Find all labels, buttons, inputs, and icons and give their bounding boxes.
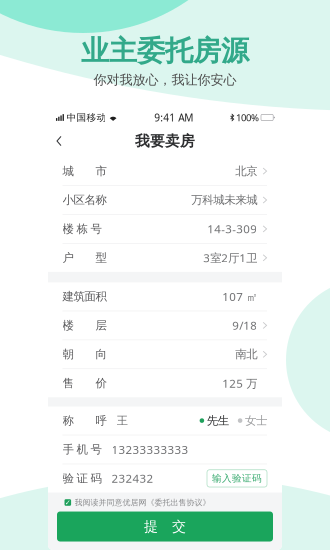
button[interactable]: ✓ — [48, 495, 282, 509]
staticText: 称 呼 — [62, 413, 106, 428]
button[interactable]: 小区名称 — [48, 186, 282, 214]
staticText: ✓ — [65, 498, 71, 507]
button[interactable]: 楼 层 — [48, 311, 282, 339]
staticText: 小区名称 — [62, 193, 106, 207]
button[interactable]: 称 呼 — [48, 406, 282, 435]
staticText: 我阅读并同意优居网《委托出售协议》 — [75, 497, 211, 508]
staticText: 13233333333 — [111, 442, 188, 457]
staticText: 万科城未来城 — [191, 193, 257, 207]
staticText: 我要卖房 — [135, 132, 195, 150]
button[interactable]: 朝 向 — [48, 340, 282, 368]
staticText: 9:41 AM — [154, 111, 193, 124]
button[interactable]: Back — [48, 125, 70, 157]
staticText: 城 市 — [62, 164, 106, 178]
staticText: 南北 — [235, 347, 257, 361]
staticText: 先生 — [207, 413, 229, 428]
staticText: 125 万 — [222, 375, 257, 391]
button[interactable]: 户 型 — [48, 244, 282, 272]
staticText: 验 证 码 — [62, 471, 101, 486]
staticText: 王 — [116, 413, 127, 428]
button[interactable]: 建筑面积 — [48, 282, 282, 311]
staticText: 107 ㎡ — [222, 289, 257, 304]
staticText: 输入验证码 — [212, 472, 262, 484]
staticText: 建筑面积 — [62, 289, 106, 304]
staticText: 女士 — [245, 413, 267, 428]
button[interactable]: 提 交 — [57, 511, 273, 541]
staticText: 中国移动 — [66, 111, 106, 124]
button[interactable]: 输入验证码 — [207, 470, 267, 487]
staticText: 3室2厅1卫 — [203, 250, 257, 266]
staticText: 业主委托房源 — [81, 33, 249, 69]
staticText: 楼 栋 号 — [62, 222, 101, 236]
staticText: 232432 — [111, 471, 153, 486]
staticText: 9/18 — [232, 318, 257, 333]
button[interactable]: 售 价 — [48, 369, 282, 397]
staticText: 14-3-309 — [207, 221, 257, 237]
staticText: 提 交 — [144, 518, 186, 535]
button[interactable]: 城 市 — [48, 157, 282, 185]
staticText: 手 机 号 — [62, 442, 101, 457]
button[interactable]: 楼 栋 号 — [48, 215, 282, 243]
staticText: 售 价 — [62, 376, 106, 390]
staticText: 户 型 — [62, 251, 106, 265]
staticText: 你对我放心，我让你安心 — [93, 72, 236, 88]
staticText: 北京 — [235, 164, 257, 178]
staticText: 朝 向 — [62, 347, 106, 361]
staticText: 100% — [236, 111, 259, 124]
staticText: 楼 层 — [62, 318, 106, 333]
